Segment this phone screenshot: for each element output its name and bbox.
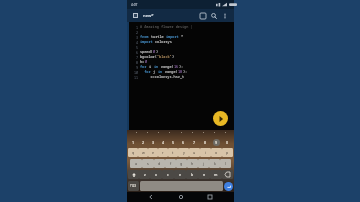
button[interactable]: w <box>138 148 148 157</box>
button[interactable]: j <box>198 159 209 168</box>
staticText: ?123 <box>130 184 137 188</box>
button[interactable]: p <box>222 148 233 157</box>
staticText: for <box>140 64 149 69</box>
button[interactable]: b <box>186 170 198 179</box>
button[interactable]: n <box>198 170 210 179</box>
button[interactable]: Search <box>208 10 219 21</box>
staticText: ) <box>156 49 159 54</box>
staticText: 7 <box>193 140 196 145</box>
button[interactable]: 6 <box>178 137 189 147</box>
staticText: 1 <box>132 140 135 145</box>
button[interactable]: ' <box>210 131 218 136</box>
button[interactable]: ' <box>165 131 173 136</box>
button[interactable]: q <box>128 148 138 157</box>
staticText: i <box>205 150 206 155</box>
button[interactable]: Back <box>145 192 157 202</box>
staticText: turtle <box>151 34 166 39</box>
staticText: # Amazing flower design | <box>140 24 193 29</box>
staticText: 8 <box>136 60 138 64</box>
button[interactable]: 0 <box>222 137 233 147</box>
button[interactable]: 2 <box>138 137 148 147</box>
button[interactable]: Recents <box>204 192 216 202</box>
staticText: i <box>149 64 154 69</box>
staticText: * <box>181 34 184 39</box>
button[interactable]: x <box>150 170 162 179</box>
staticText: from <box>140 34 151 39</box>
button[interactable]: Backspace <box>222 170 233 179</box>
button[interactable]: k <box>209 159 220 168</box>
button[interactable]: e <box>148 148 158 157</box>
staticText: 9 <box>215 140 218 145</box>
staticText: 2 <box>136 30 138 34</box>
staticText: ' <box>136 132 137 136</box>
staticText: 8 <box>204 140 207 145</box>
staticText: 5 <box>172 140 175 145</box>
button[interactable]: ' <box>199 131 207 136</box>
staticText: 16 <box>174 64 179 69</box>
button[interactable]: ' <box>188 131 196 136</box>
button[interactable]: 7 <box>189 137 200 147</box>
button[interactable]: 9 <box>211 137 222 147</box>
button[interactable]: u <box>189 148 200 157</box>
button[interactable]: y <box>178 148 189 157</box>
staticText: 2 <box>142 140 145 145</box>
button[interactable]: Save <box>197 10 208 21</box>
button[interactable]: s <box>142 159 154 168</box>
button[interactable]: ' <box>132 131 140 136</box>
staticText: 3 <box>136 35 138 39</box>
button[interactable]: Menu <box>131 11 140 20</box>
staticText: q <box>132 150 135 155</box>
button[interactable]: 1 <box>128 137 138 147</box>
staticText: z <box>144 172 146 177</box>
button[interactable]: ' <box>177 131 185 136</box>
staticText: import <box>166 34 181 39</box>
button[interactable]: f <box>165 159 176 168</box>
button[interactable]: ' <box>221 131 229 136</box>
staticText: ' <box>214 132 215 136</box>
button[interactable]: l <box>220 159 231 168</box>
staticText: n <box>203 172 206 177</box>
button[interactable]: m <box>210 170 222 179</box>
staticText: 3 <box>152 140 155 145</box>
button[interactable]: ' <box>143 131 151 136</box>
staticText: 0 <box>226 140 229 145</box>
button[interactable]: 5 <box>168 137 178 147</box>
staticText: range( <box>165 69 178 74</box>
button[interactable]: t <box>168 148 178 157</box>
staticText: t <box>172 150 174 155</box>
staticText: x <box>155 172 157 177</box>
staticText: 10 <box>134 70 138 74</box>
staticText: a <box>135 161 138 166</box>
button[interactable]: d <box>154 159 165 168</box>
button[interactable]: i <box>200 148 211 157</box>
staticText: colorsys <box>155 39 172 44</box>
button[interactable]: More options <box>219 10 230 21</box>
button[interactable]: Space <box>140 181 223 191</box>
button[interactable]: z <box>139 170 150 179</box>
button[interactable]: g <box>176 159 187 168</box>
button[interactable]: c <box>162 170 174 179</box>
button[interactable]: 4 <box>158 137 168 147</box>
button[interactable]: r <box>158 148 168 157</box>
staticText: d <box>158 161 161 166</box>
staticText: c <box>167 172 169 177</box>
staticText: 4 <box>162 140 165 145</box>
button[interactable]: Enter <box>224 182 233 191</box>
button[interactable]: Run <box>213 111 228 126</box>
button[interactable]: ' <box>154 131 162 136</box>
staticText: 11 <box>134 75 138 79</box>
button[interactable]: Home <box>175 192 187 202</box>
button[interactable]: a <box>130 159 142 168</box>
staticText: p <box>226 150 229 155</box>
button[interactable]: 3 <box>148 137 158 147</box>
button[interactable]: 8 <box>200 137 211 147</box>
staticText: "black" <box>157 54 172 59</box>
button[interactable]: ?123 <box>128 181 139 191</box>
button[interactable]: h <box>187 159 198 168</box>
button[interactable]: v <box>174 170 186 179</box>
staticText: h= <box>140 59 145 64</box>
button[interactable]: o <box>211 148 222 157</box>
button[interactable]: Shift <box>128 170 139 179</box>
staticText: k <box>214 161 216 166</box>
staticText: speed( <box>140 49 153 54</box>
